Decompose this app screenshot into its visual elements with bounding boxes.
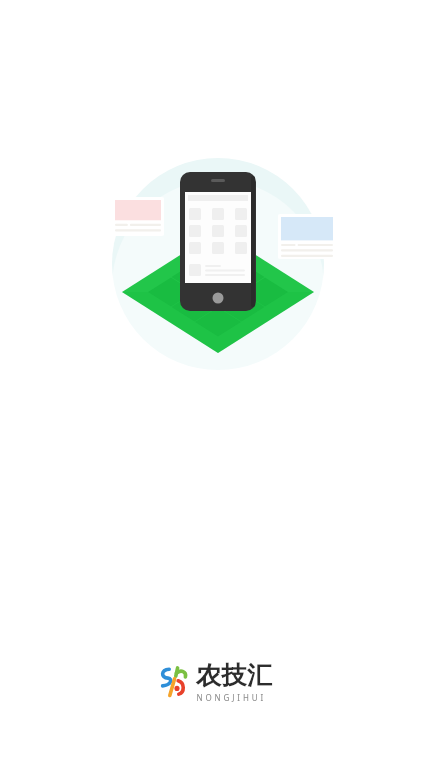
staticText: 农技汇 bbox=[196, 660, 273, 691]
staticText: N O N G J I H U I bbox=[196, 692, 264, 703]
